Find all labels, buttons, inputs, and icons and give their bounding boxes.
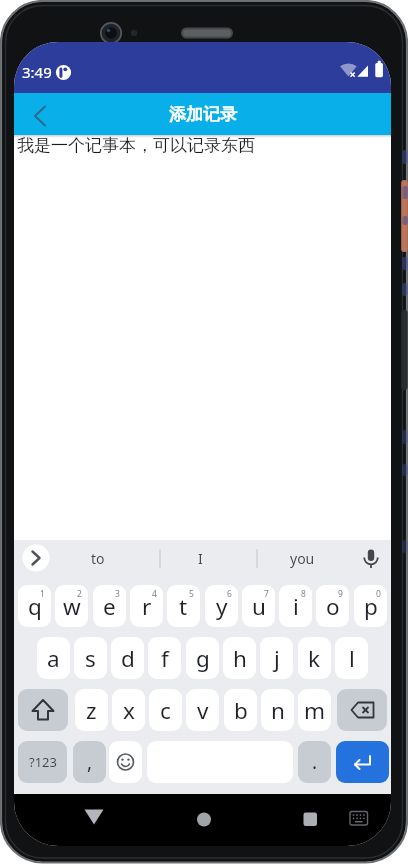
staticText: you (290, 549, 315, 568)
staticText: z (86, 695, 97, 726)
staticText: to (91, 549, 105, 568)
button[interactable]: f (148, 637, 181, 679)
button[interactable]: k (298, 637, 331, 679)
button[interactable]: ?123 (18, 741, 67, 783)
button[interactable]: i (279, 585, 312, 627)
staticText: y (216, 591, 228, 622)
button[interactable]: r (130, 585, 163, 627)
staticText: q (28, 591, 42, 622)
staticText: s (85, 643, 96, 674)
staticText: 1 (40, 588, 45, 600)
staticText: i (293, 591, 299, 622)
staticText: . (312, 749, 318, 775)
staticText: m (304, 695, 326, 726)
staticText: u (252, 591, 266, 622)
button[interactable]: o (316, 585, 349, 627)
staticText: w (63, 591, 81, 622)
staticText: v (197, 695, 209, 726)
staticText: o (326, 591, 340, 622)
staticText: , (87, 749, 93, 775)
staticText: 6 (227, 588, 232, 600)
staticText: 8 (301, 588, 306, 600)
button[interactable]: t (167, 585, 200, 627)
staticText: 9 (338, 588, 343, 600)
staticText: t (179, 591, 188, 622)
button[interactable]: h (223, 637, 256, 679)
staticText: 3 (115, 588, 120, 600)
button[interactable]: w (55, 585, 88, 627)
staticText: n (271, 695, 285, 726)
button[interactable]: I (180, 545, 220, 572)
staticText: 添加记录 (169, 104, 237, 125)
button[interactable]: m (298, 689, 331, 731)
button[interactable]: q (18, 585, 51, 627)
button[interactable] (357, 544, 385, 572)
staticText: d (121, 643, 135, 674)
staticText: I (198, 549, 203, 568)
staticText: a (47, 643, 60, 674)
button[interactable]: d (111, 637, 144, 679)
staticText: e (103, 591, 116, 622)
button[interactable]: x (112, 689, 145, 731)
staticText: f (161, 643, 169, 674)
button[interactable]: c (149, 689, 182, 731)
button[interactable] (78, 803, 110, 835)
button[interactable]: a (37, 637, 70, 679)
staticText: b (234, 695, 248, 726)
button[interactable]: you (282, 545, 322, 572)
button[interactable]: v (186, 689, 219, 731)
button[interactable] (22, 97, 60, 131)
button[interactable]: y (205, 585, 238, 627)
staticText: 我是一个记事本，可以记录东西 (17, 135, 255, 156)
button[interactable] (336, 741, 389, 783)
button[interactable] (109, 741, 142, 783)
button[interactable]: to (78, 545, 118, 572)
button[interactable]: s (74, 637, 107, 679)
staticText: x (123, 695, 135, 726)
staticText: 3:49 (22, 62, 52, 82)
button[interactable]: , (73, 741, 106, 783)
button[interactable]: g (186, 637, 219, 679)
button[interactable]: e (93, 585, 126, 627)
button[interactable]: j (260, 637, 293, 679)
button[interactable]: . (298, 741, 331, 783)
staticText: g (196, 643, 210, 674)
staticText: 2 (77, 588, 82, 600)
staticText: 5 (189, 588, 194, 600)
button[interactable] (344, 803, 374, 835)
staticText: k (308, 643, 321, 674)
button[interactable] (287, 803, 319, 835)
button[interactable]: z (75, 689, 108, 731)
button[interactable] (18, 689, 68, 731)
staticText: 4 (152, 588, 157, 600)
button[interactable]: u (242, 585, 275, 627)
button[interactable]: p (354, 585, 387, 627)
staticText: ?123 (29, 753, 57, 771)
button[interactable] (188, 803, 220, 835)
staticText: l (349, 643, 355, 674)
button[interactable]: l (335, 637, 368, 679)
staticText: r (142, 591, 152, 622)
button[interactable]: n (261, 689, 294, 731)
staticText: h (233, 643, 247, 674)
staticText: j (274, 643, 280, 674)
staticText: 7 (264, 588, 269, 600)
button[interactable] (337, 689, 387, 731)
staticText: c (160, 695, 171, 726)
staticText: 0 (376, 588, 381, 600)
staticText: p (364, 591, 378, 622)
button[interactable]: b (224, 689, 257, 731)
